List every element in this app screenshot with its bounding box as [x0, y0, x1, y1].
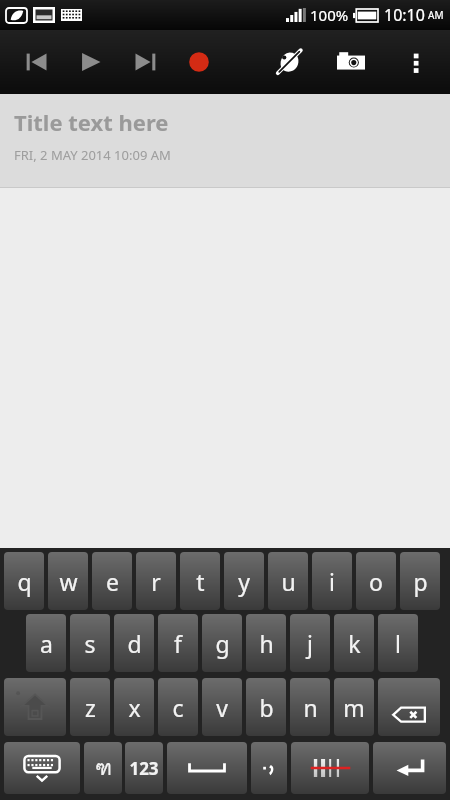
staticText: g — [215, 628, 230, 659]
button[interactable]: t — [180, 552, 220, 610]
staticText: v — [216, 692, 228, 723]
button[interactable]: Shift — [4, 678, 66, 736]
staticText: z — [85, 692, 96, 723]
button[interactable]: Enter — [373, 742, 446, 794]
button[interactable]: More options — [392, 38, 440, 86]
button[interactable]: w — [48, 552, 88, 610]
button[interactable]: a — [26, 614, 66, 672]
button[interactable]: l — [378, 614, 418, 672]
staticText: FRI, 2 MAY 2014 10:09 AM — [14, 146, 171, 164]
button[interactable]: x — [114, 678, 154, 736]
staticText: b — [259, 692, 274, 723]
button[interactable]: Hide keyboard — [4, 742, 80, 794]
button[interactable]: 123 — [125, 742, 163, 794]
button[interactable]: d — [114, 614, 154, 672]
button[interactable]: Next — [121, 38, 169, 86]
button[interactable]: k — [334, 614, 374, 672]
button[interactable]: o — [356, 552, 396, 610]
staticText: 10:10 — [384, 4, 425, 26]
staticText: ฑ — [95, 752, 112, 784]
staticText: o — [369, 566, 383, 597]
staticText: m — [343, 692, 365, 723]
staticText: i — [329, 566, 335, 597]
staticText: 123 — [129, 757, 159, 780]
staticText: h — [259, 628, 274, 659]
button[interactable]: Title text here — [0, 94, 450, 187]
staticText: n — [303, 692, 318, 723]
staticText: r — [151, 566, 161, 597]
button[interactable]: s — [70, 614, 110, 672]
staticText: t — [196, 566, 205, 597]
button[interactable]: m — [334, 678, 374, 736]
button[interactable]: h — [246, 614, 286, 672]
button[interactable]: u — [268, 552, 308, 610]
button[interactable]: Delete — [378, 678, 440, 736]
staticText: x — [128, 692, 141, 723]
staticText: s — [84, 628, 96, 659]
staticText: q — [17, 566, 32, 597]
button[interactable]: b — [246, 678, 286, 736]
staticText: AM — [428, 8, 444, 22]
button[interactable]: z — [70, 678, 110, 736]
staticText: 100% — [310, 5, 349, 25]
staticText: k — [348, 628, 361, 659]
staticText: u — [281, 566, 296, 597]
staticText: a — [40, 628, 53, 659]
staticText: p — [413, 566, 428, 597]
staticText: e — [106, 566, 119, 597]
button[interactable]: c — [158, 678, 198, 736]
button[interactable]: j — [290, 614, 330, 672]
button[interactable]: Drawing disabled — [265, 38, 313, 86]
staticText: l — [395, 628, 401, 659]
button[interactable]: r — [136, 552, 176, 610]
staticText: d — [127, 628, 142, 659]
button[interactable]: p — [400, 552, 440, 610]
button[interactable]: Previous — [13, 38, 61, 86]
staticText: Title text here — [14, 107, 169, 137]
staticText: y — [238, 566, 250, 597]
button[interactable]: Punctuation — [251, 742, 287, 794]
button[interactable]: Scan barcode — [291, 742, 369, 794]
button[interactable]: Camera — [327, 38, 375, 86]
staticText: w — [59, 566, 78, 597]
button[interactable]: y — [224, 552, 264, 610]
button[interactable]: Play — [67, 38, 115, 86]
button[interactable]: n — [290, 678, 330, 736]
staticText: f — [174, 628, 182, 659]
button[interactable]: ฑ — [84, 742, 122, 794]
button[interactable]: q — [4, 552, 44, 610]
staticText: c — [172, 692, 184, 723]
button[interactable]: Record — [175, 38, 223, 86]
button[interactable]: e — [92, 552, 132, 610]
button[interactable]: g — [202, 614, 242, 672]
button[interactable]: Space — [167, 742, 247, 794]
staticText: j — [307, 628, 313, 659]
button[interactable]: v — [202, 678, 242, 736]
button[interactable]: i — [312, 552, 352, 610]
button[interactable]: f — [158, 614, 198, 672]
